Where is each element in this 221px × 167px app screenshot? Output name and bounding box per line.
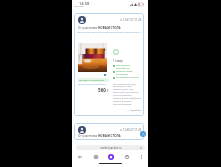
staticText: — подробнее <box>127 109 142 112</box>
staticText: коллекция <box>116 73 128 76</box>
staticText: От участника <box>78 134 98 138</box>
button[interactable]: Tabs <box>123 153 131 161</box>
button[interactable]: Assistant <box>107 153 115 161</box>
staticText: 13:48 27.11.24 <box>123 128 142 132</box>
staticText: 560 <box>98 87 106 93</box>
staticText: Всё готовый <box>116 64 130 67</box>
button[interactable]: market.yandex.ru <box>76 145 145 150</box>
staticText: От участника <box>78 26 98 30</box>
staticText: НОВЫЙ СТОЛЬ <box>98 26 121 30</box>
staticText: Это первый взгляд, вочередь очень хорошо… <box>113 82 142 106</box>
staticText: комплектый <box>116 67 130 70</box>
button[interactable]: Scroll to top <box>140 131 146 137</box>
staticText: Вт, 6 ноя <box>74 5 84 8</box>
button[interactable]: 13:48 27.11.24 <box>74 123 144 140</box>
staticText: Распродажа постели <box>116 76 140 79</box>
staticText: детское постельное белье из... <box>78 83 110 86</box>
button[interactable]: Back <box>76 153 84 161</box>
staticText: НОВЫЙ СТОЛЬ <box>98 134 121 138</box>
button[interactable]: 13:47 27.11.24 <box>74 13 144 116</box>
staticText: Доставка установленная <box>79 79 105 82</box>
staticText: 14:58 <box>79 1 90 6</box>
staticText: ₽ <box>106 89 109 93</box>
button[interactable] <box>78 43 107 72</box>
staticText: market.yandex.ru <box>100 146 122 150</box>
button[interactable]: More options <box>137 153 145 161</box>
staticText: https://shop.wb.ru/t-postable-obtyazatel… <box>77 30 142 33</box>
button[interactable]: Search by image <box>92 153 100 161</box>
staticText: 13:47 27.11.24 <box>123 18 142 22</box>
staticText: 1 товар <box>113 59 123 63</box>
staticText: Главная новая <box>116 70 133 73</box>
